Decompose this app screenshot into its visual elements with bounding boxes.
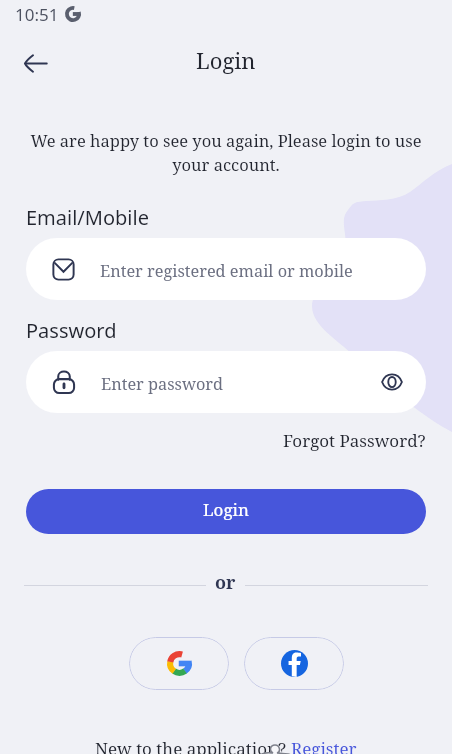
staticText: Enter registered email or mobile xyxy=(100,260,353,282)
staticText: New to the application? xyxy=(95,737,291,754)
button[interactable]: Register xyxy=(291,737,357,754)
button[interactable]: Login xyxy=(26,489,426,534)
staticText: Login xyxy=(196,45,256,75)
staticText: Password xyxy=(26,317,117,344)
staticText: or xyxy=(215,570,236,595)
staticText: We are happy to see you again, Please lo… xyxy=(14,129,438,176)
button[interactable]: Forgot Password? xyxy=(283,429,426,452)
button[interactable]: Enter password xyxy=(26,351,426,413)
button[interactable]: Back xyxy=(11,39,59,87)
button[interactable]: Enter registered email or mobile xyxy=(26,238,426,300)
button[interactable]: Sign in with Facebook xyxy=(244,637,344,690)
button[interactable]: Show password xyxy=(370,360,414,404)
staticText: 10:51 xyxy=(15,3,59,26)
button[interactable]: Sign in with Google xyxy=(129,637,229,690)
staticText: Email/Mobile xyxy=(26,204,149,231)
staticText: Enter password xyxy=(101,373,224,395)
staticText: Login xyxy=(203,498,249,521)
